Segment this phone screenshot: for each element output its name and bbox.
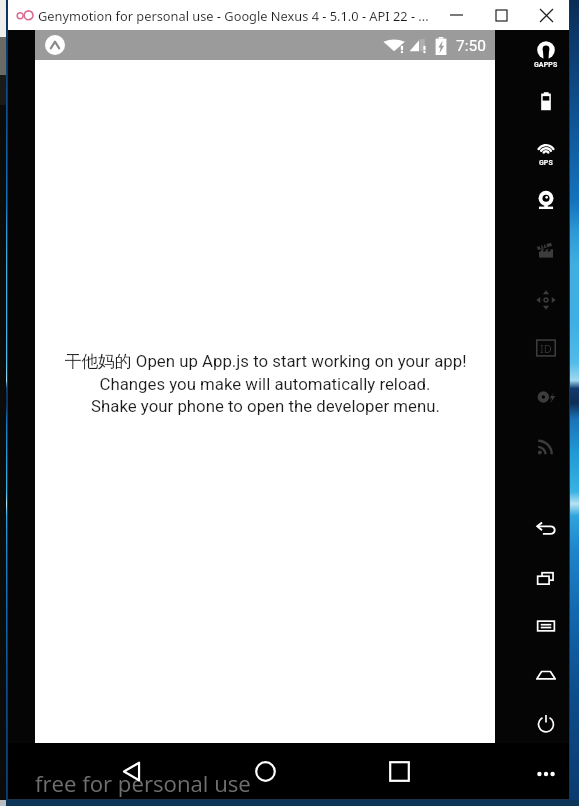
button[interactable]: Close [524,0,569,30]
button[interactable]: Network [525,435,567,457]
staticText: GAPPS [534,61,558,69]
button[interactable]: Back [525,518,567,540]
staticText: Shake your phone to open the developer m… [91,396,440,416]
staticText: free for personal use [35,768,251,798]
button[interactable]: Minimize [434,0,479,30]
staticText: GPS [539,159,553,167]
button[interactable]: Home [242,748,288,794]
button[interactable]: Screencast [525,240,567,262]
button[interactable]: Battery [525,90,567,112]
button[interactable]: Recents [525,567,567,589]
button[interactable]: More [525,763,567,785]
button[interactable]: GAPPS [525,39,567,69]
button[interactable]: Accelerometer [525,289,567,311]
button[interactable]: Back [108,748,154,794]
button[interactable]: Recents [376,748,422,794]
button[interactable]: Maximize [479,0,524,30]
button[interactable]: Menu [525,615,567,637]
button[interactable]: Home [525,664,567,686]
staticText: Genymotion for personal use - Google Nex… [38,7,429,24]
button[interactable]: GPS [525,137,567,167]
button[interactable]: Disk IO [525,386,567,408]
staticText: 7:50 [456,37,486,55]
button[interactable]: Camera [525,189,567,211]
staticText: ID [540,341,552,356]
button[interactable]: Identifiers [525,337,567,359]
staticText: 干他妈的 Open up App.js to start working on … [64,351,467,372]
button[interactable]: Power [525,712,567,734]
staticText: Changes you make will automatically relo… [99,374,431,394]
